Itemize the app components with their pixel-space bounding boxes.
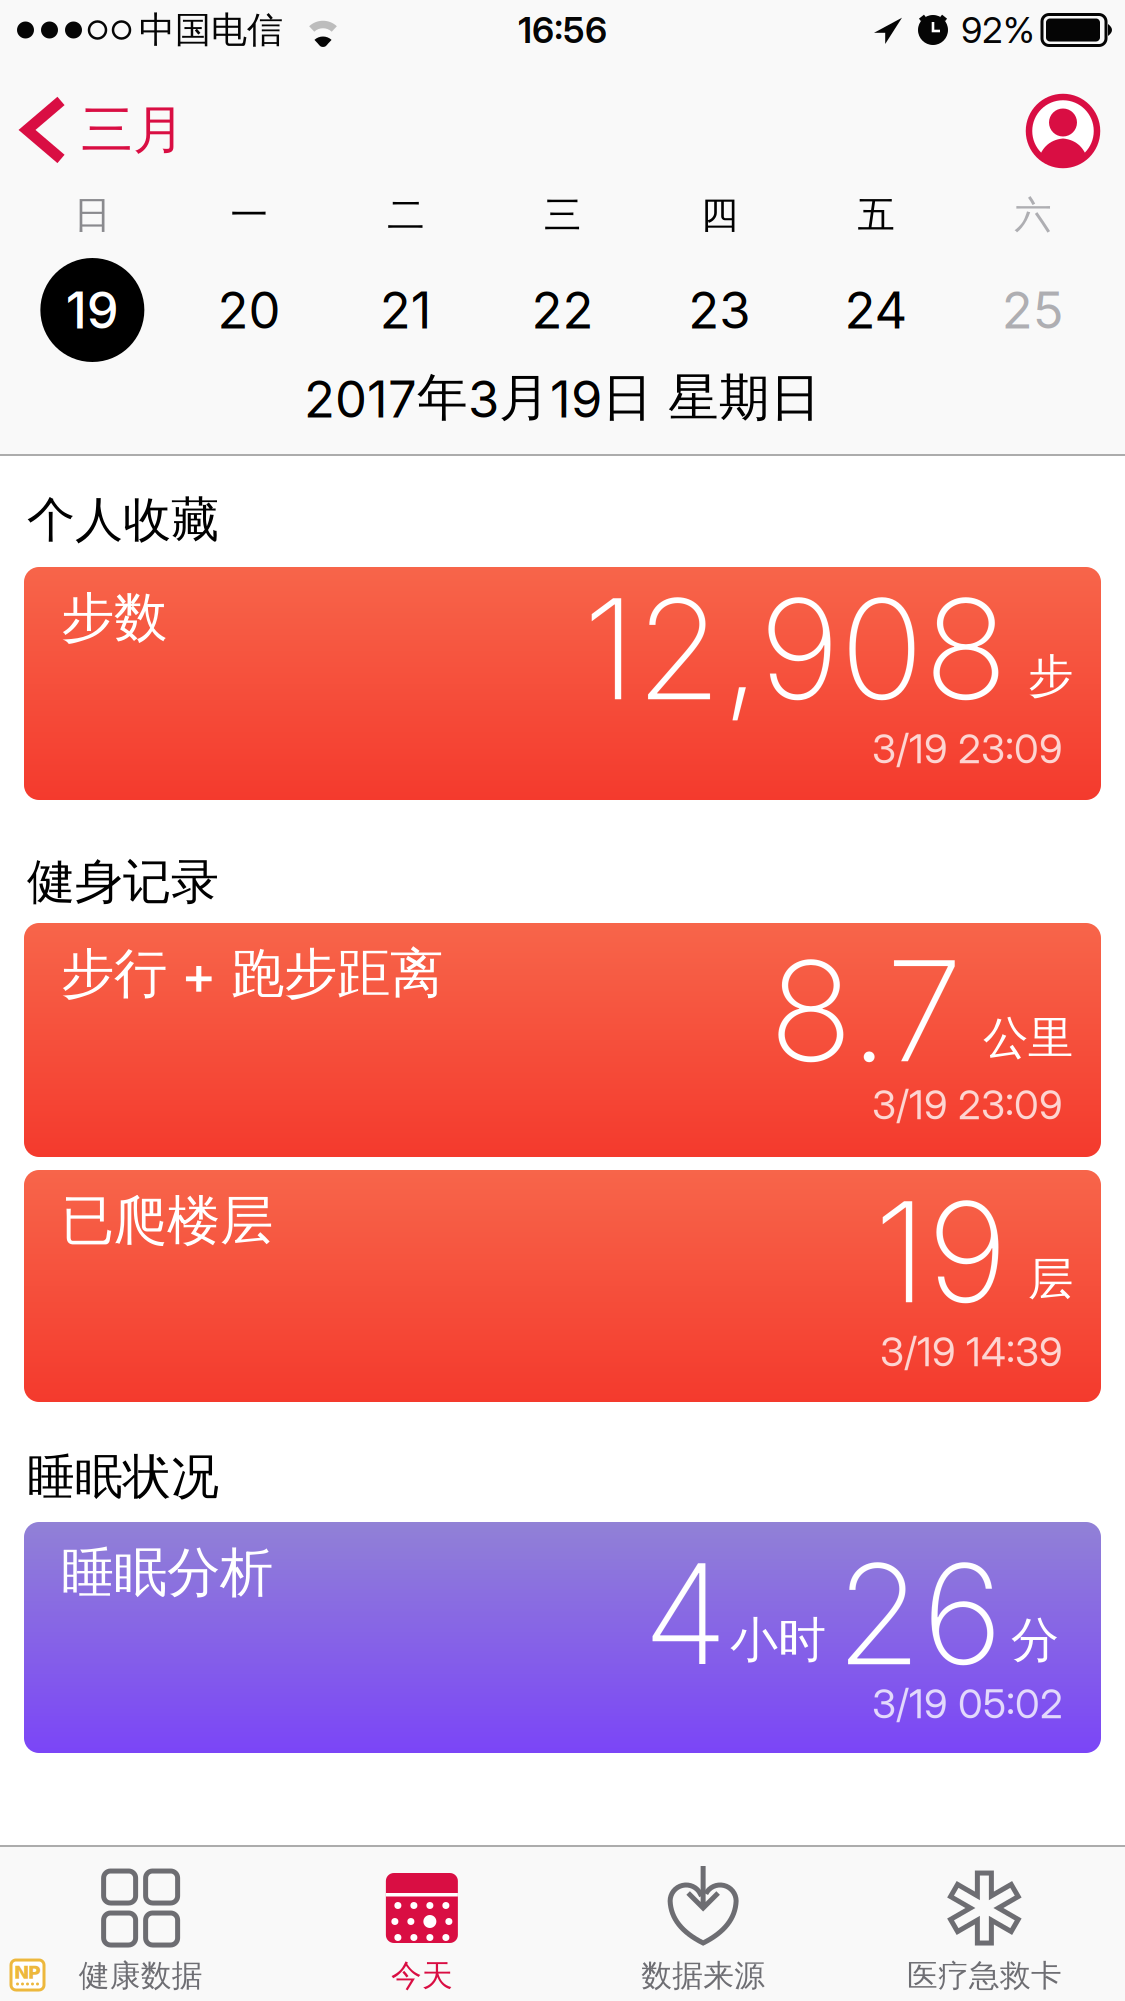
staticText: 健康数据 — [79, 1957, 203, 1995]
staticText: 步行 + 跑步距离 — [61, 941, 443, 1006]
staticText: 21 — [380, 280, 432, 340]
staticText: 3/19 05:02 — [872, 1680, 1063, 1727]
staticText: 26 — [836, 1532, 1003, 1696]
staticText: 三月 — [81, 98, 185, 162]
staticText: 层 — [1028, 1251, 1073, 1307]
staticText: 19 — [66, 280, 119, 340]
staticText: 分 — [1011, 1611, 1059, 1670]
staticText: 20 — [218, 280, 281, 340]
staticText: 92% — [961, 9, 1035, 51]
staticText: 个人收藏 — [27, 490, 219, 549]
staticText: 24 — [844, 280, 907, 340]
staticText: 五 — [857, 192, 894, 238]
staticText: 19 — [874, 1170, 1008, 1334]
staticText: 8.7 — [769, 929, 963, 1093]
staticText: 二 — [387, 192, 424, 238]
staticText: 3/19 23:09 — [872, 725, 1063, 772]
staticText: 12,908 — [583, 567, 1008, 731]
staticText: 小时 — [730, 1611, 826, 1670]
staticText: 步 — [1028, 648, 1073, 704]
staticText: 23 — [688, 280, 750, 340]
staticText: NP — [14, 1961, 40, 1983]
staticText: 睡眠分析 — [61, 1540, 273, 1605]
staticText: 步数 — [61, 585, 167, 650]
staticText: 25 — [1002, 280, 1064, 340]
staticText: 今天 — [391, 1957, 453, 1995]
staticText: 日 — [74, 192, 111, 238]
staticText: 睡眠状况 — [27, 1447, 219, 1506]
staticText: 已爬楼层 — [61, 1188, 273, 1253]
staticText: 医疗急救卡 — [907, 1957, 1062, 1995]
staticText: 2017年3月19日 星期日 — [304, 367, 821, 429]
staticText: 三 — [544, 192, 581, 238]
staticText: 六 — [1014, 192, 1051, 238]
staticText: 四 — [701, 192, 738, 238]
staticText: 16:56 — [518, 9, 607, 51]
staticText: 4 — [643, 1532, 728, 1696]
staticText: 数据来源 — [641, 1957, 765, 1995]
staticText: 3/19 23:09 — [872, 1081, 1063, 1128]
staticText: 3/19 14:39 — [880, 1328, 1063, 1375]
staticText: 中国电信 — [139, 8, 283, 52]
staticText: 健身记录 — [27, 852, 219, 911]
staticText: 22 — [531, 280, 593, 340]
staticText: 一 — [231, 192, 268, 238]
staticText: 公里 — [983, 1010, 1073, 1066]
